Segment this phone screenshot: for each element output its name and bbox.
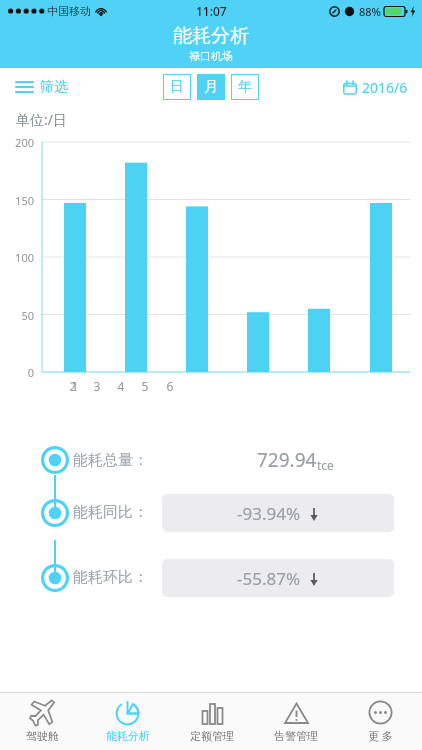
- staticText: 4: [109, 378, 133, 394]
- staticText: 88%: [359, 4, 381, 19]
- other: 驾驶舱: [30, 700, 56, 726]
- staticText: 能耗总量：: [73, 451, 148, 470]
- staticText: 729.94: [257, 447, 317, 473]
- staticText: 2016/6: [362, 78, 408, 97]
- button[interactable]: 2016/6: [341, 76, 410, 99]
- staticText: 100: [0, 250, 34, 265]
- staticText: -55.87%: [237, 567, 301, 590]
- staticText: tce: [317, 457, 334, 473]
- staticText: 更 多: [368, 728, 393, 743]
- staticText: 50: [0, 308, 34, 323]
- staticText: 能耗同比：: [73, 503, 148, 522]
- other: 告警管理: [284, 701, 309, 726]
- other: 更多: [368, 700, 393, 725]
- button[interactable]: 驾驶舱: [0, 693, 85, 750]
- staticText: 禄口机场: [189, 49, 233, 63]
- staticText: 11:07: [196, 3, 227, 19]
- staticText: 日: [170, 78, 184, 96]
- button[interactable]: 能耗同比：: [0, 480, 422, 545]
- staticText: 3: [85, 378, 109, 394]
- button[interactable]: 年: [231, 74, 259, 100]
- staticText: 能耗环比：: [73, 568, 148, 587]
- staticText: 月: [204, 78, 218, 96]
- staticText: 筛选: [40, 78, 68, 96]
- staticText: 6: [158, 378, 182, 394]
- button[interactable]: 能耗分析: [85, 693, 170, 750]
- button[interactable]: 告警管理: [254, 693, 338, 750]
- button[interactable]: 月: [197, 74, 225, 100]
- other: 定额管理: [200, 701, 225, 726]
- staticText: 年: [238, 78, 252, 96]
- button[interactable]: 定额管理: [170, 693, 254, 750]
- staticText: 能耗分析: [173, 24, 249, 48]
- staticText: -93.94%: [237, 502, 301, 525]
- staticText: 告警管理: [274, 729, 318, 743]
- staticText: 单位:/日: [16, 110, 67, 129]
- button[interactable]: 能耗环比：: [0, 545, 422, 610]
- staticText: 0: [0, 365, 34, 380]
- staticText: 定额管理: [190, 729, 234, 743]
- staticText: 中国移动: [47, 4, 91, 18]
- other: 能耗分析: [115, 701, 140, 726]
- staticText: 能耗分析: [106, 729, 150, 743]
- staticText: 150: [0, 193, 34, 208]
- staticText: 2: [61, 378, 85, 394]
- button[interactable]: 日: [163, 74, 191, 100]
- staticText: 200: [0, 135, 34, 150]
- staticText: 1: [63, 378, 87, 394]
- staticText: 驾驶舱: [26, 729, 59, 743]
- button[interactable]: 能耗总量：: [0, 440, 422, 480]
- staticText: 5: [133, 378, 157, 394]
- button[interactable]: 筛选: [14, 74, 70, 100]
- button[interactable]: 更多: [338, 693, 422, 750]
